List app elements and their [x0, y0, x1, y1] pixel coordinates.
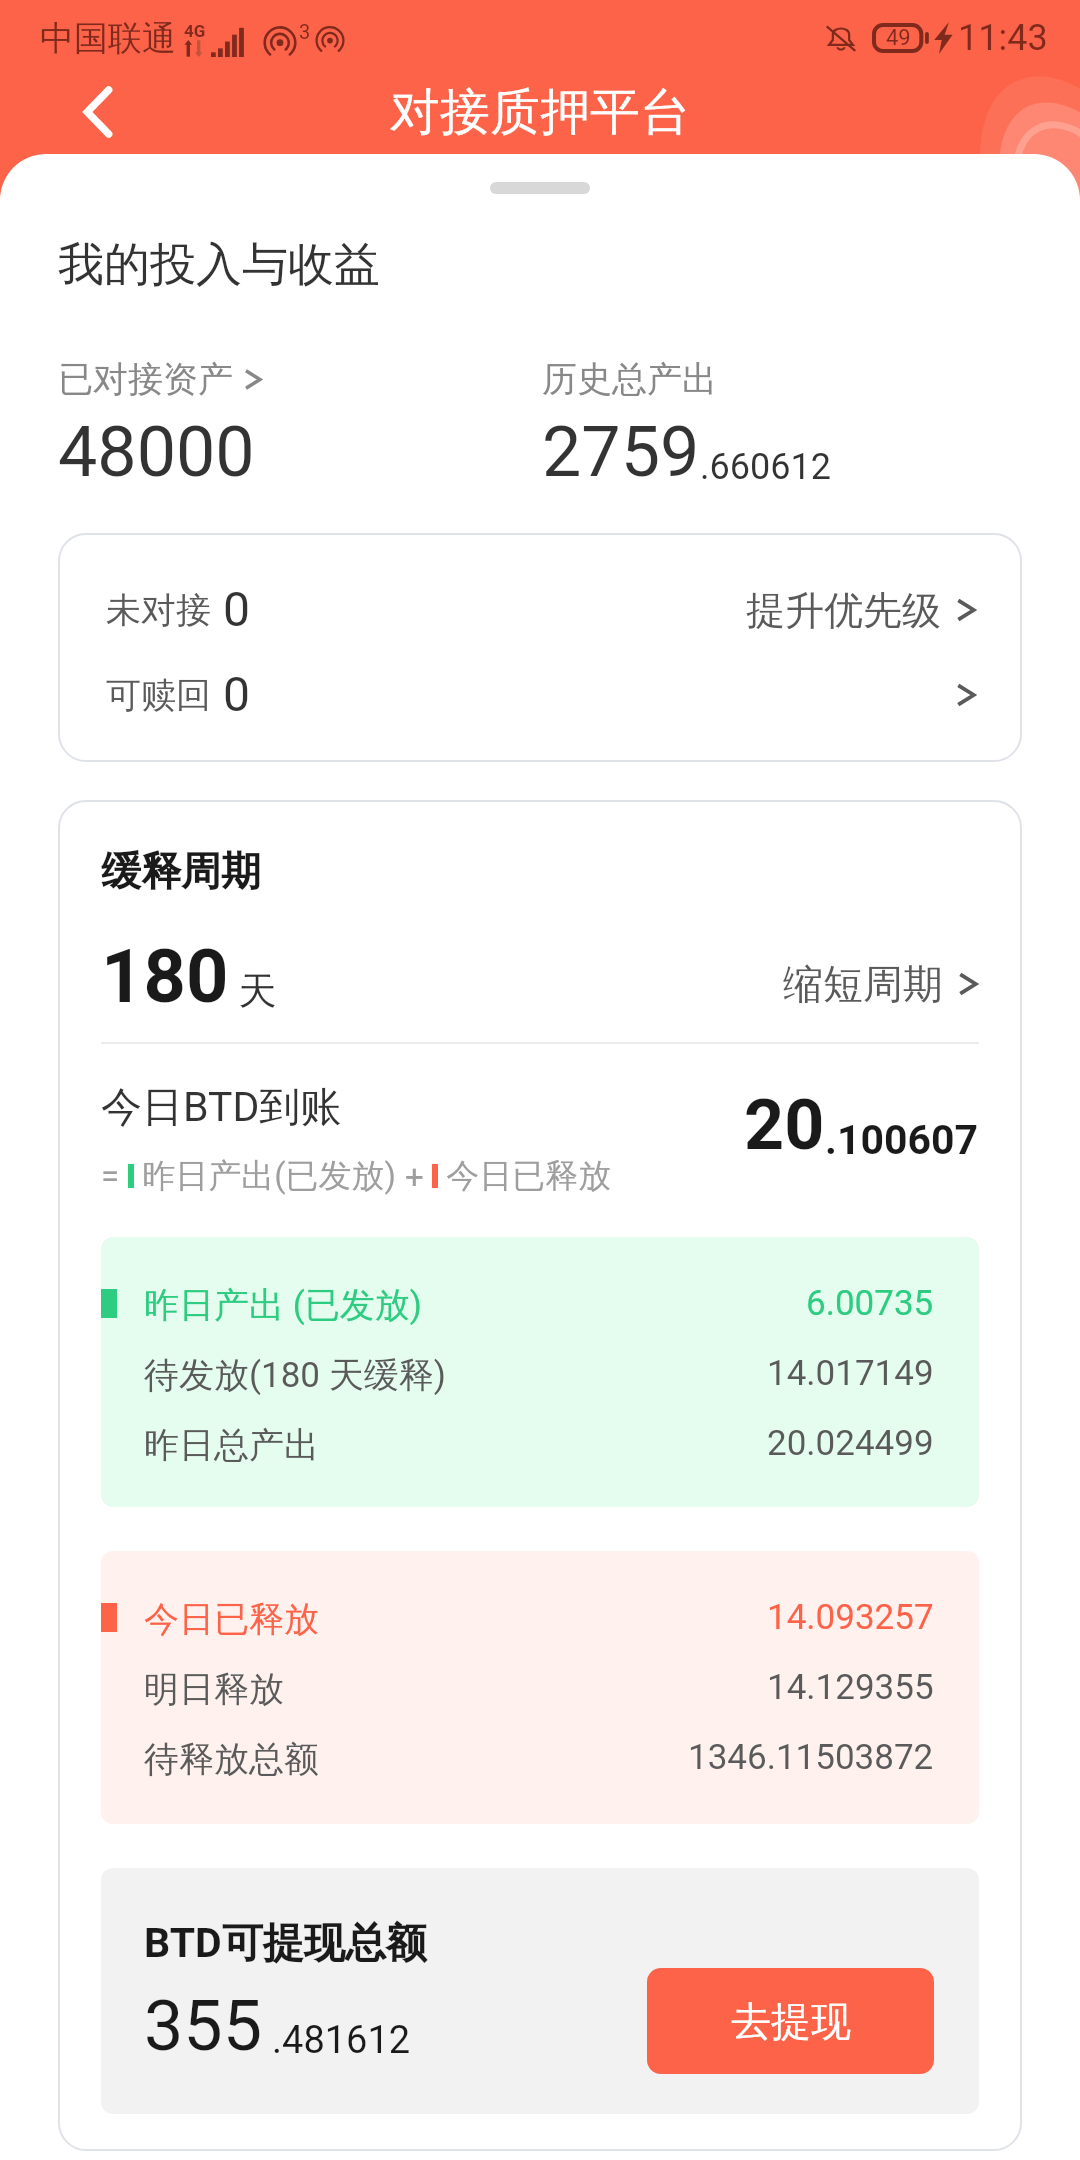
staticText: 昨日总产出 — [144, 1423, 319, 1467]
staticText: 20.024499 — [767, 1423, 934, 1464]
staticText: .100607 — [825, 1116, 979, 1164]
button[interactable]: 去提现 — [647, 1968, 934, 2074]
staticText: 14.129355 — [767, 1667, 934, 1708]
staticText: 今日已释放 — [438, 1155, 612, 1197]
staticText: 中国联通 — [40, 17, 176, 60]
staticText: 14.017149 — [767, 1353, 934, 1394]
staticText: .481612 — [272, 2018, 411, 2063]
staticText: 0 — [223, 581, 250, 637]
staticText: .660612 — [700, 446, 831, 488]
button[interactable]: 未对接 — [58, 579, 1022, 641]
staticText: 0 — [223, 666, 250, 722]
button[interactable]: 缩短周期 — [783, 959, 979, 1009]
staticText: 对接质押平台 — [390, 81, 690, 144]
staticText: + — [405, 1157, 432, 1196]
staticText: 11:43 — [958, 17, 1048, 59]
staticText: 今日已释放 — [144, 1597, 319, 1641]
staticText: 49 — [886, 25, 911, 51]
button[interactable]: 可赎回 — [58, 664, 1022, 726]
staticText: BTD可提现总额 — [144, 1918, 427, 1970]
staticText: 昨日产出 (已发放) — [144, 1283, 422, 1327]
button[interactable]: 已对接资产 — [58, 357, 263, 401]
staticText: 去提现 — [731, 1996, 851, 2046]
staticText: 可赎回 — [106, 673, 211, 717]
staticText: 待释放总额 — [144, 1737, 319, 1781]
button[interactable]: Back — [56, 70, 140, 154]
staticText: 48000 — [58, 411, 255, 493]
staticText: 180 — [101, 933, 229, 1020]
staticText: 未对接 — [106, 588, 211, 632]
staticText: 3 — [299, 20, 311, 43]
staticText: 明日释放 — [144, 1667, 284, 1711]
staticText: 待发放(180 天缓释) — [144, 1353, 446, 1397]
staticText: 历史总产出 — [542, 357, 717, 401]
staticText: 今日BTD到账 — [101, 1082, 342, 1134]
staticText: 14.093257 — [767, 1597, 934, 1638]
staticText: 355 — [144, 1985, 263, 2067]
staticText: 我的投入与收益 — [58, 236, 380, 294]
staticText: 6.00735 — [806, 1283, 934, 1324]
staticText: 4G — [184, 21, 206, 41]
staticText: 已对接资产 — [58, 357, 233, 401]
staticText: 天 — [229, 967, 277, 1015]
staticText: 20 — [744, 1084, 825, 1166]
staticText: 提升优先级 — [746, 586, 941, 635]
staticText: 1346.11503872 — [688, 1737, 934, 1778]
staticText: 缩短周期 — [783, 959, 943, 1009]
staticText: 2759 — [542, 411, 700, 493]
staticText: 昨日产出(已发放) — [134, 1155, 405, 1197]
staticText: = — [101, 1157, 128, 1196]
staticText: 缓释周期 — [101, 846, 261, 896]
